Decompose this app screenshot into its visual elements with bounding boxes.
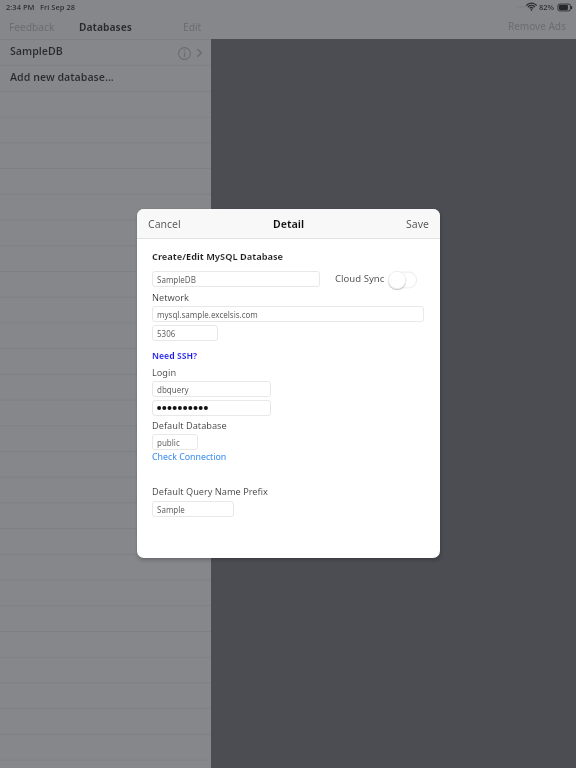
button[interactable]: dbquery (152, 381, 271, 397)
staticText: Cancel (148, 217, 181, 231)
button[interactable]: SampleDB (152, 271, 320, 287)
button[interactable]: Check Connection (152, 451, 227, 463)
staticText: Network (152, 291, 189, 304)
staticText: Remove Ads (508, 19, 566, 33)
button[interactable]: Edit (183, 20, 202, 34)
button[interactable]: mysql.sample.excelsis.com (152, 306, 424, 322)
staticText: Default Database (152, 419, 227, 432)
staticText: SampleDB (157, 274, 196, 285)
staticText: Need SSH? (152, 350, 198, 362)
staticText: 5306 (157, 328, 176, 339)
staticText: Create/Edit MySQL Database (152, 250, 284, 263)
button[interactable]: Feedback (9, 20, 55, 34)
button[interactable]: Need SSH? (152, 350, 198, 362)
staticText: Feedback (9, 20, 55, 34)
staticText: Detail (273, 217, 305, 231)
button[interactable]: public (152, 434, 198, 450)
staticText: Databases (79, 20, 132, 34)
button[interactable]: Cancel (148, 217, 181, 231)
staticText: dbquery (157, 384, 189, 395)
staticText: Default Query Name Prefix (152, 485, 268, 498)
button[interactable]: Cloud Sync toggle (388, 271, 418, 289)
staticText: 82% (539, 2, 555, 12)
staticText: Login (152, 366, 177, 379)
button[interactable]: Save (406, 217, 429, 231)
button[interactable]: 5306 (152, 325, 218, 341)
button[interactable]: Sample (152, 501, 234, 517)
staticText: public (157, 437, 180, 448)
button[interactable]: Remove Ads (508, 19, 566, 33)
button[interactable]: SampleDB (0, 40, 211, 65)
staticText: Edit (183, 20, 202, 34)
staticText: Check Connection (152, 451, 227, 463)
staticText: Save (406, 217, 429, 231)
staticText: mysql.sample.excelsis.com (157, 309, 258, 320)
staticText: Fri Sep 28 (40, 2, 76, 12)
button[interactable] (152, 400, 271, 416)
staticText: 2:34 PM (6, 2, 35, 12)
button[interactable]: Info (175, 44, 193, 62)
staticText: Sample (157, 504, 185, 515)
staticText: Add new database... (10, 70, 114, 84)
button[interactable]: Add new database... (0, 66, 211, 91)
staticText: Cloud Sync (335, 272, 385, 285)
staticText: SampleDB (10, 44, 63, 58)
